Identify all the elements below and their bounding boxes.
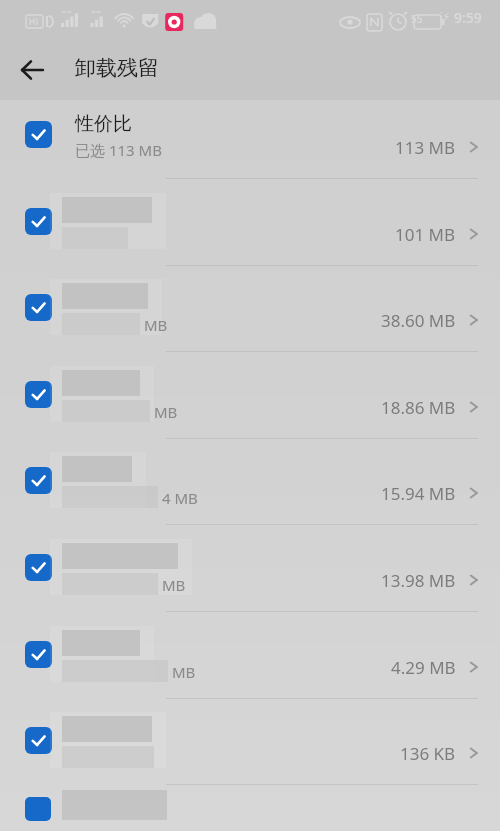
staticText: 已选 113 MB: [75, 140, 162, 160]
staticText: 9:59: [454, 8, 482, 27]
staticText: MB: [154, 402, 178, 422]
staticText: 38.60 MB: [381, 309, 456, 332]
button[interactable]: Selected: [0, 277, 500, 363]
staticText: 55: [411, 12, 423, 26]
button[interactable]: Selected: [25, 294, 52, 321]
button[interactable]: Selected: [25, 554, 52, 581]
button[interactable]: Selected: [25, 121, 52, 148]
staticText: MB: [162, 575, 186, 595]
staticText: 136 KB: [400, 742, 456, 765]
button[interactable]: Selected: [25, 208, 52, 235]
button[interactable]: Selected: [25, 727, 52, 754]
button[interactable]: Selected: [25, 641, 52, 668]
staticText: 15.94 MB: [381, 482, 456, 505]
button[interactable]: Selected: [25, 467, 52, 494]
staticText: 13.98 MB: [381, 569, 456, 592]
button[interactable]: Selected: [0, 710, 500, 796]
staticText: MB: [172, 662, 196, 682]
button[interactable]: Selected: [0, 364, 500, 450]
staticText: 18.86 MB: [381, 396, 456, 419]
button[interactable]: Selected: [0, 191, 500, 277]
staticText: 4.29 MB: [391, 656, 456, 679]
button[interactable]: Selected: [25, 381, 52, 408]
staticText: 性价比: [75, 112, 132, 136]
staticText: ⁝⚡: [440, 9, 450, 23]
staticText: 113 MB: [395, 136, 456, 159]
staticText: 卸载残留: [75, 55, 159, 81]
staticText: 4 MB: [162, 488, 198, 508]
button[interactable]: Selected: [0, 450, 500, 536]
button[interactable]: Selected: [0, 537, 500, 623]
button[interactable]: Selected: [0, 624, 500, 710]
button[interactable]: Selected: [0, 104, 500, 190]
staticText: MB: [144, 315, 168, 335]
staticText: 101 MB: [395, 223, 456, 246]
button[interactable]: Back: [12, 50, 52, 90]
